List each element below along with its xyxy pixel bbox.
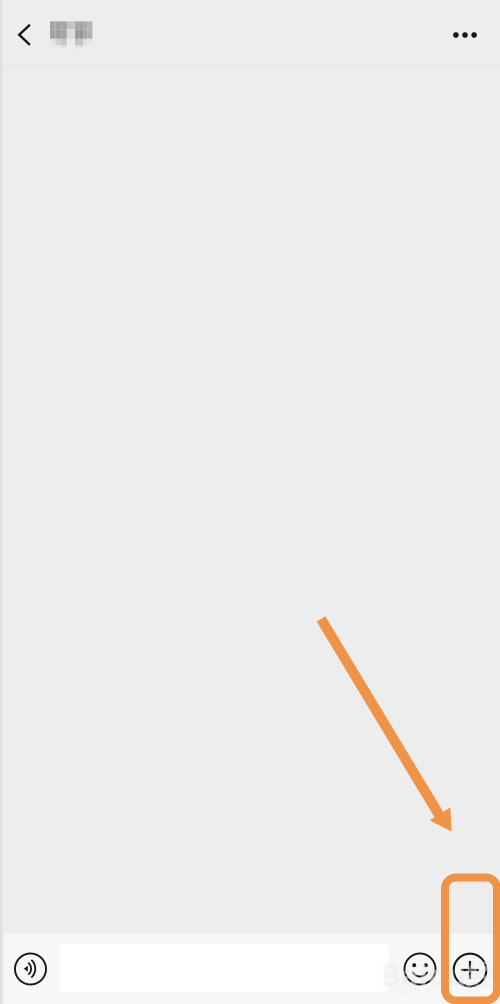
staticText: Baidu经验 (381, 955, 500, 994)
staticText: jingyan.baidu.com (383, 980, 478, 994)
button[interactable]: More actions (447, 939, 493, 1001)
button[interactable]: Emoji (397, 938, 443, 1000)
button[interactable]: More (436, 10, 494, 60)
button[interactable] (0, 10, 106, 60)
button[interactable]: Voice message (4, 938, 56, 1000)
